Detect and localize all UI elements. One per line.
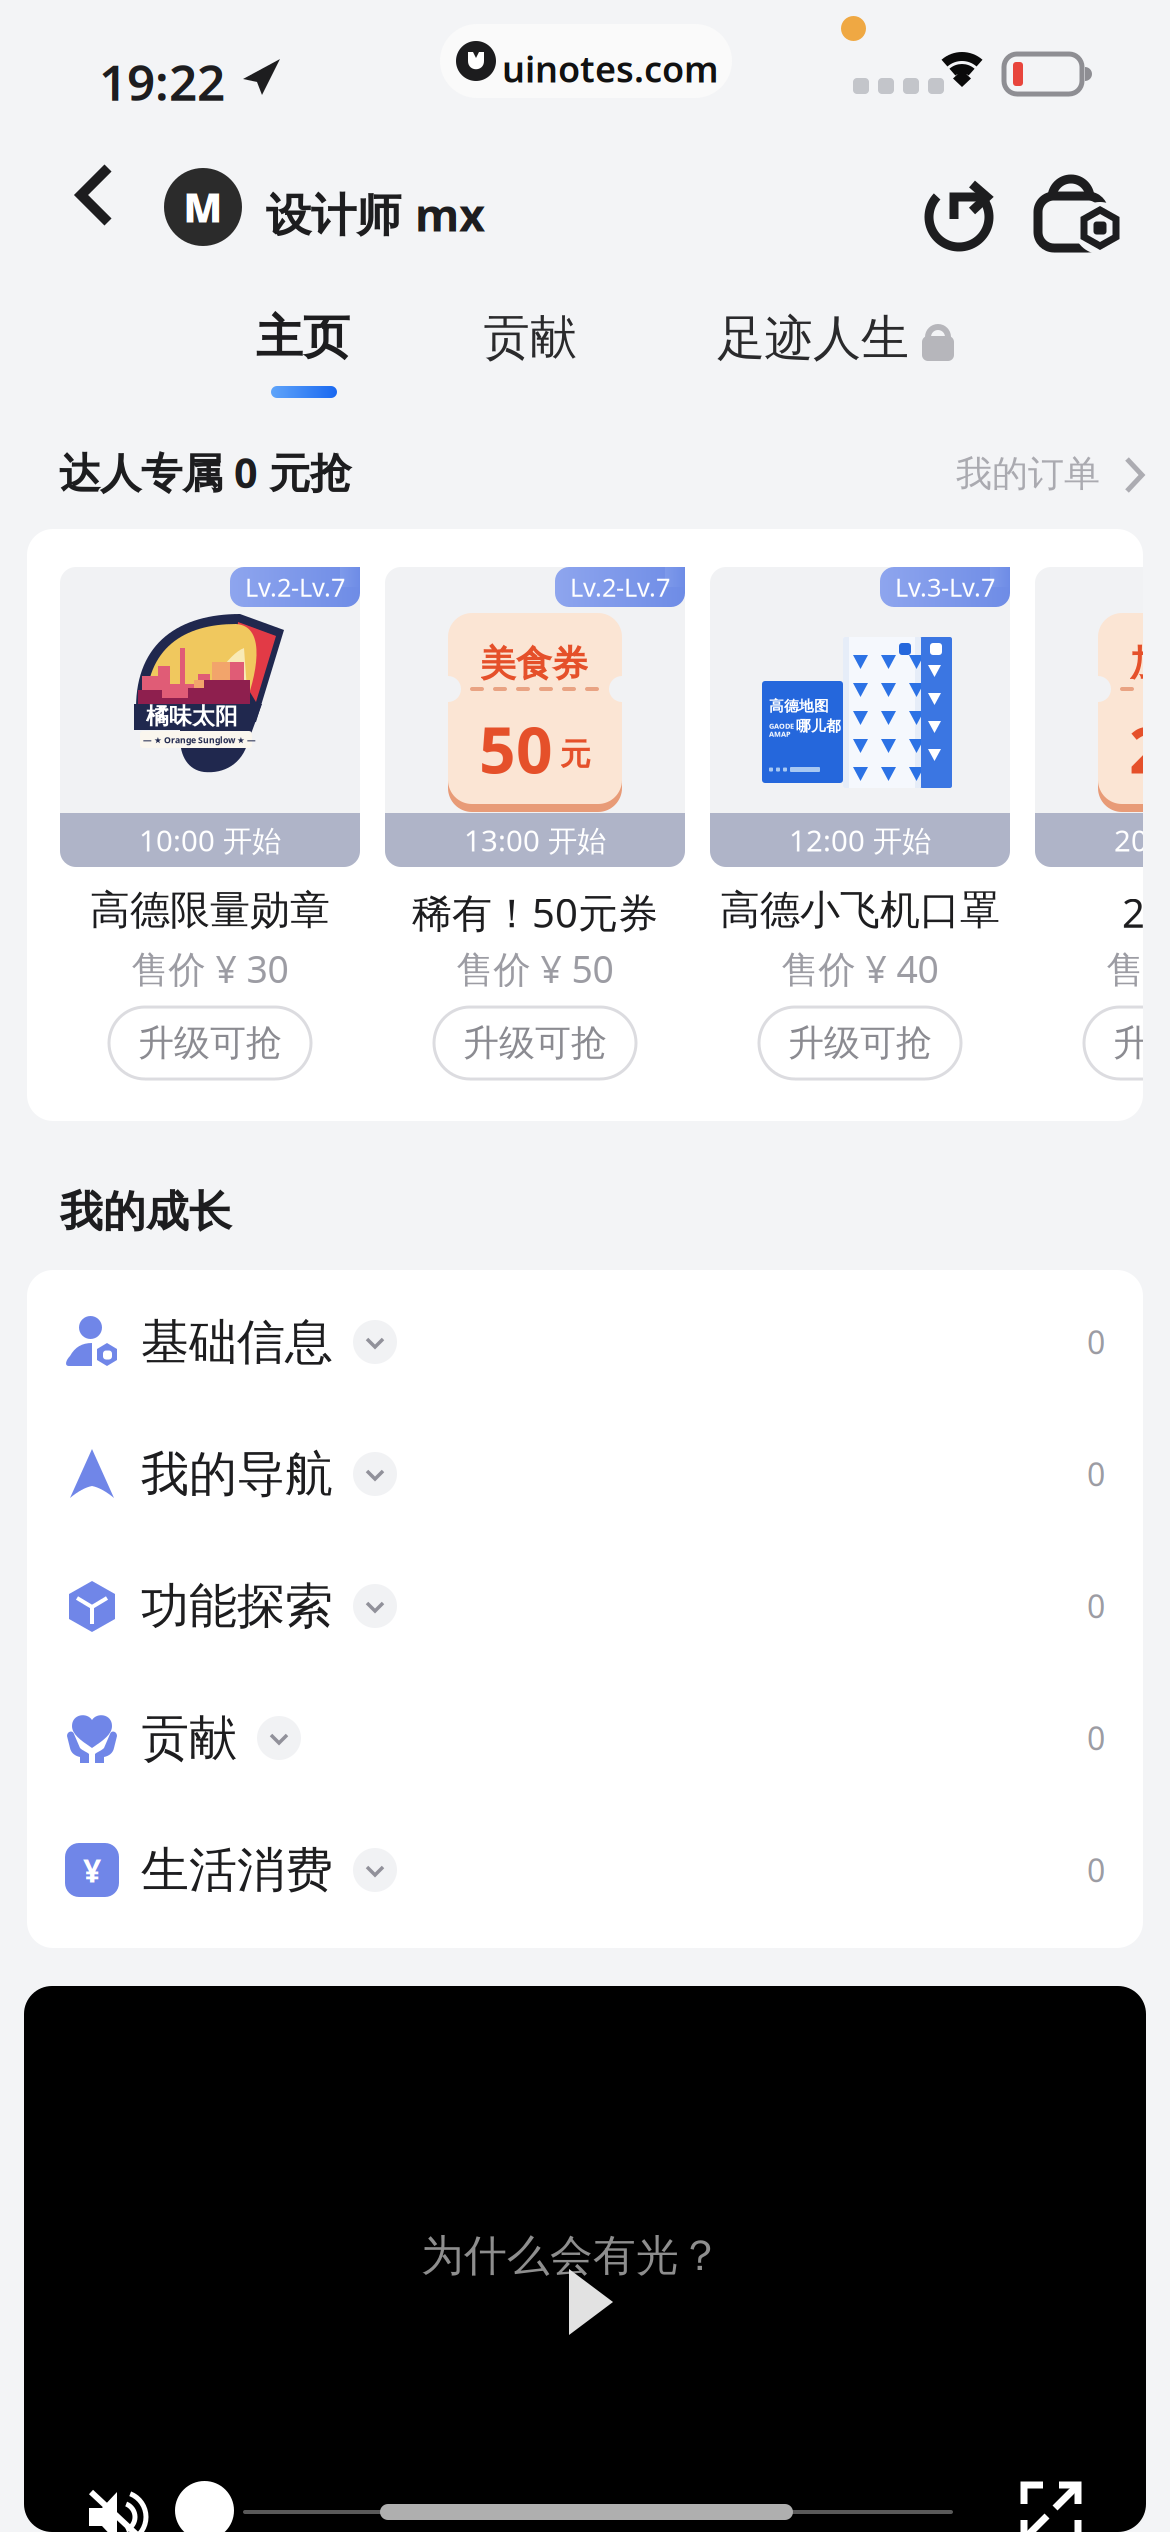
staticText: 升级可抢 [463,1020,607,1066]
staticText: 20 [1129,705,1170,792]
button[interactable]: 高德地图 [710,567,1010,1119]
staticText: 哪儿都 [796,717,841,735]
button[interactable]: 功能探索 [27,1540,1143,1672]
staticText: 为什么会有光？ [421,2229,722,2283]
staticText: 贡献 [483,308,577,367]
staticText: 20:00 开始 [1114,820,1170,860]
staticText: Lv.2-Lv.7 [245,570,345,604]
staticText: 主页 [256,308,350,367]
staticText: 50 [479,705,553,792]
staticText: 我的订单 [956,451,1100,496]
staticText: 我的成长 [60,1185,232,1239]
staticText: uinotes.com [502,44,719,93]
staticText: AMAP [769,729,791,739]
staticText: 12:00 开始 [789,820,931,860]
staticText: 我的导航 [141,1444,333,1504]
staticText: 0 [1087,1584,1105,1628]
staticText: Lv.2-Lv.7 [570,570,670,604]
button[interactable]: Mute [71,2470,173,2532]
staticText: 0 [1087,1848,1105,1892]
button[interactable]: 我的订单 [956,437,1168,517]
staticText: 生活消费 [141,1840,333,1900]
staticText: GAODE [769,721,794,731]
staticText: 元 [560,735,591,774]
button[interactable]: 基础信息 [27,1276,1143,1408]
staticText: 稀有！50元券 [412,885,658,939]
staticText: 售价 ¥ 20 [1106,943,1170,994]
button[interactable]: 足迹人生 [717,300,967,428]
staticText: 基础信息 [141,1312,333,1372]
button[interactable]: 主页 [224,300,384,428]
staticText: 加油券 [1130,641,1170,686]
staticText: — ★ Orange Sunglow ★ — [143,734,256,746]
staticText: 升级可抢 [138,1020,282,1066]
staticText: 达人专属 0 元抢 [59,444,351,500]
button[interactable]: Back [44,138,146,252]
staticText: 升级可抢 [1113,1020,1170,1066]
button[interactable]: 贡献 [27,1672,1143,1804]
button[interactable]: Share [902,152,1022,274]
staticText: 贡献 [141,1708,237,1768]
staticText: 20元券 [1122,885,1170,939]
button[interactable]: 贡献 [457,300,607,428]
staticText: Lv.3-Lv.7 [895,570,995,604]
staticText: 功能探索 [141,1576,333,1636]
button[interactable]: 我的导航 [27,1408,1143,1540]
staticText: 高德小飞机口罩 [720,885,1000,935]
staticText: 0 [1087,1452,1105,1496]
button[interactable]: Shopping bag [1016,150,1142,272]
staticText: 升级可抢 [788,1020,932,1066]
button[interactable]: ¥ [27,1804,1143,1936]
button[interactable]: 美食券 [385,567,685,1119]
button[interactable]: 加油券 [1035,567,1170,1119]
staticText: 橘味太阳 [146,702,238,731]
staticText: 13:00 开始 [464,820,606,860]
staticText: 售价 ¥ 30 [131,943,288,994]
staticText: 售价 ¥ 50 [456,943,613,994]
staticText: 售价 ¥ 40 [781,943,938,994]
staticText: 美食券 [480,641,588,686]
staticText: 足迹人生 [717,308,909,368]
staticText: 高德限量勋章 [90,885,330,935]
staticText: 10:00 开始 [139,820,281,860]
staticText: M [183,180,222,234]
staticText: 0 [1087,1320,1105,1364]
staticText: 高德地图 [769,697,829,715]
button[interactable]: 橘味太阳 [60,567,360,1119]
staticText: 19:22 [99,48,225,115]
staticText: ¥ [83,1848,101,1892]
staticText: 0 [1087,1716,1105,1760]
button[interactable]: Play [541,2241,641,2363]
staticText: 设计师 mx [266,183,485,245]
button[interactable]: Full screen [1003,2464,1099,2532]
